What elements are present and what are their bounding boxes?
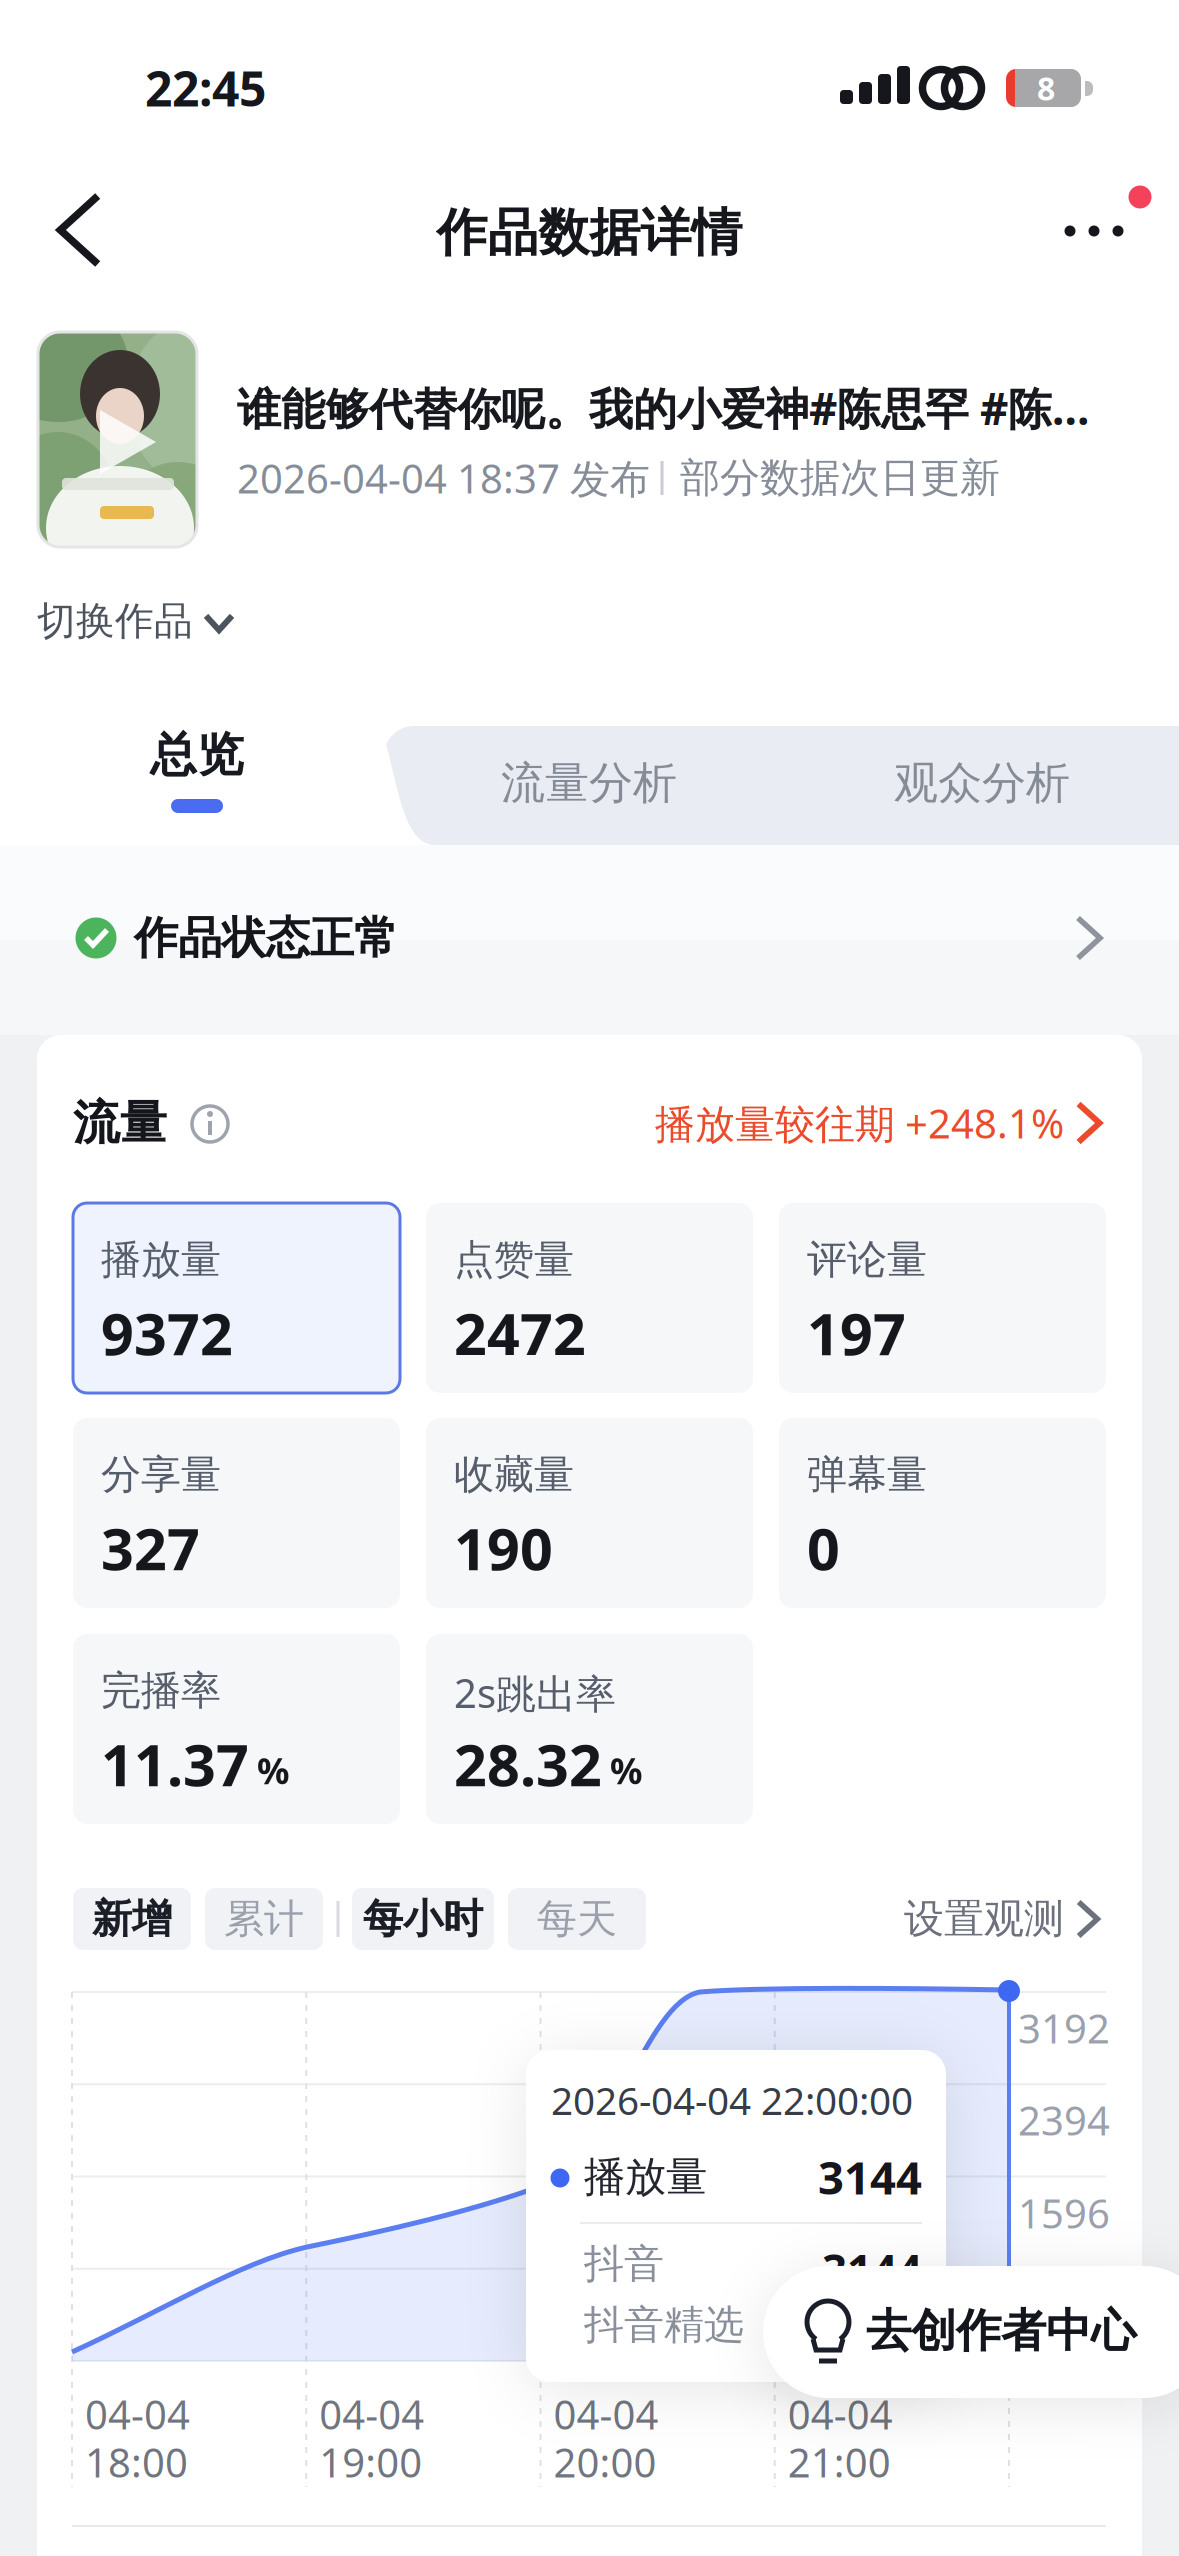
staticText: 22:45 [145,56,266,120]
staticText: 18:00 [85,2435,188,2488]
button[interactable]: 总览 [87,710,307,840]
staticText: 327 [101,1510,200,1586]
staticText: 1596 [1018,2186,1110,2239]
staticText: 3144 [822,2241,922,2299]
button[interactable]: 去创作者中心 [763,2266,1179,2398]
staticText: 190 [454,1510,553,1586]
staticText: 每天 [537,1894,617,1943]
button[interactable]: Play video [38,332,197,547]
staticText: 弹幕量 [807,1450,927,1499]
staticText: 收藏量 [454,1450,574,1499]
staticText: 切换作品 [37,597,193,645]
button[interactable]: Back [44,190,114,270]
staticText: 197 [807,1295,906,1371]
staticText: 2026-04-04 22:00:00 [551,2074,913,2126]
staticText: 播放量 [584,2152,707,2202]
button[interactable]: 收藏量 [426,1418,753,1608]
button[interactable]: 切换作品 [37,591,267,651]
staticText: 评论量 [807,1235,927,1284]
staticText: 观众分析 [894,756,1070,810]
staticText: 分享量 [101,1450,221,1499]
staticText: 04-04 [553,2387,658,2440]
staticText: 播放量较往期 +248.1% [655,1096,1064,1149]
staticText: 作品数据详情 [436,202,742,264]
staticText: 04-04 [319,2387,424,2440]
button[interactable]: 播放量 [73,1203,400,1393]
button[interactable]: 每天 [508,1888,646,1950]
button[interactable]: 分享量 [73,1418,400,1608]
button[interactable]: More [1049,201,1139,261]
button[interactable]: 2s跳出率 [426,1634,753,1824]
staticText: 总览 [150,726,244,784]
staticText: 2394 [1018,2093,1110,2146]
button[interactable]: 播放量较往期 +248.1% [584,1088,1104,1158]
staticText: 04-04 [788,2387,893,2440]
staticText: 播放量 [101,1235,221,1284]
button[interactable]: 新增 [73,1888,191,1950]
staticText: 每小时 [363,1894,483,1943]
staticText: 2472 [454,1295,586,1371]
staticText: 04-04 [85,2387,190,2440]
staticText: % [610,1746,642,1794]
staticText: 抖音精选 [584,2300,744,2349]
staticText: 2026-04-04 18:37 发布 [237,451,650,504]
staticText: 798 [1018,2278,1087,2331]
button[interactable]: 观众分析 [842,728,1122,838]
staticText: 8 [1037,67,1055,109]
button[interactable]: 流量分析 [449,728,729,838]
staticText: 3144 [818,2147,922,2207]
staticText: 抖音 [584,2239,664,2288]
button[interactable]: 弹幕量 [779,1418,1106,1608]
staticText: 流量分析 [501,756,677,810]
button[interactable]: 完播率 [73,1634,400,1824]
staticText: 20:00 [553,2435,656,2488]
staticText: % [257,1746,289,1794]
staticText: 2s跳出率 [454,1666,616,1719]
staticText: 去创作者中心 [866,2303,1136,2359]
button[interactable]: 评论量 [779,1203,1106,1393]
button[interactable]: 每小时 [352,1888,494,1950]
staticText: 新增 [92,1894,172,1943]
staticText: 0 [807,1510,840,1586]
staticText: 作品状态正常 [134,911,398,965]
staticText: 3192 [1018,2001,1110,2054]
staticText: 设置观测 [904,1894,1064,1943]
staticText: 完播率 [101,1666,221,1715]
button[interactable]: 累计 [205,1888,323,1950]
staticText: 19:00 [319,2435,422,2488]
button[interactable]: 作品状态正常 [37,898,1142,978]
button[interactable]: 设置观测 [864,1888,1104,1950]
staticText: 28.32 [454,1726,602,1802]
staticText: 流量 [73,1094,167,1152]
button[interactable]: 点赞量 [426,1203,753,1393]
staticText: 点赞量 [454,1235,574,1284]
staticText: 9372 [101,1295,233,1371]
staticText: 谁能够代替你呢。我的小爱神#陈思罕 #陈… [237,379,1090,437]
staticText: 部分数据次日更新 [680,453,1000,502]
staticText: 累计 [224,1894,304,1943]
staticText: 11.37 [101,1726,249,1802]
staticText: 21:00 [788,2435,891,2488]
